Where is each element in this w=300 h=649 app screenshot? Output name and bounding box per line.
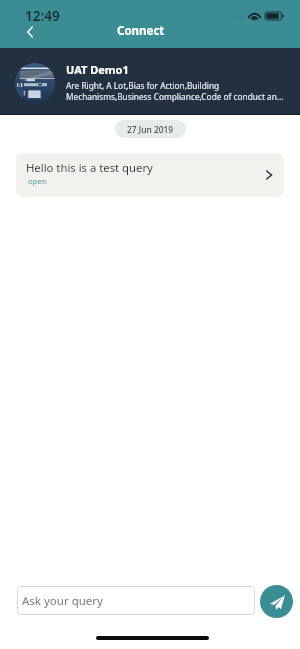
staticText: Are Right, A Lot,Bias for Action,Buildin… [66, 80, 292, 103]
button[interactable]: Send [260, 585, 293, 618]
staticText: 12:49 [25, 7, 60, 25]
staticText: open [28, 176, 47, 187]
staticText: Ask your query [22, 593, 103, 609]
button[interactable]: 27 Jun 2019 [115, 120, 186, 138]
button[interactable]: Ask your query [17, 586, 255, 615]
button[interactable]: Hello this is a test query [16, 153, 284, 197]
staticText: Hello this is a test query [26, 160, 153, 175]
staticText: UAT Demo1 [66, 62, 129, 77]
button[interactable]: Back [16, 20, 44, 44]
staticText: Connect [117, 23, 165, 39]
staticText: 27 Jun 2019 [127, 124, 174, 135]
